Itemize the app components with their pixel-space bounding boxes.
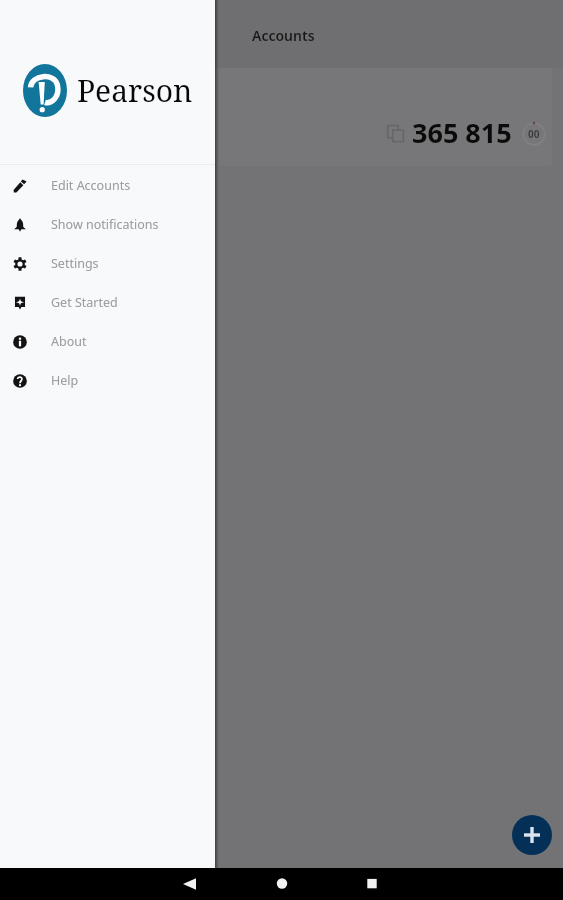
button[interactable]: Copy code bbox=[379, 117, 412, 150]
staticText: Help bbox=[51, 372, 79, 389]
button[interactable]: Get Started bbox=[0, 283, 215, 322]
staticText: Edit Accounts bbox=[51, 177, 131, 194]
button[interactable]: Home bbox=[236, 868, 327, 900]
button[interactable]: About bbox=[0, 322, 215, 361]
button[interactable]: Copy code bbox=[219, 68, 552, 166]
button[interactable]: Edit Accounts bbox=[0, 166, 215, 205]
button[interactable]: Back bbox=[144, 868, 235, 900]
staticText: 00 bbox=[528, 127, 540, 141]
staticText: Pearson bbox=[77, 70, 193, 111]
staticText: About bbox=[51, 333, 87, 350]
button[interactable]: Settings bbox=[0, 244, 215, 283]
staticText: Get Started bbox=[51, 294, 118, 311]
button[interactable]: Help bbox=[0, 361, 215, 400]
staticText: Accounts bbox=[252, 26, 315, 45]
button[interactable]: Add account bbox=[512, 815, 552, 855]
staticText: 365 815 bbox=[412, 114, 512, 151]
button[interactable]: Recent apps bbox=[326, 868, 417, 900]
staticText: Show notifications bbox=[51, 216, 159, 233]
staticText: Settings bbox=[51, 255, 99, 272]
button[interactable]: Show notifications bbox=[0, 205, 215, 244]
